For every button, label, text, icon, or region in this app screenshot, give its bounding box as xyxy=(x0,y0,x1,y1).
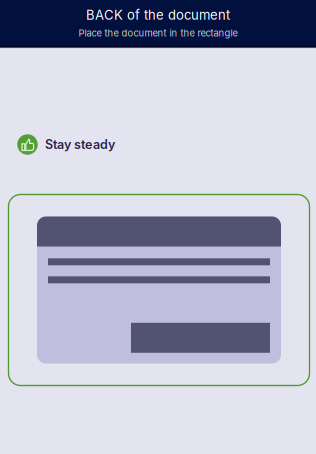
staticText: Stay steady xyxy=(45,137,115,152)
staticText: Place the document in the rectangle xyxy=(78,27,237,39)
staticText: BACK of the document xyxy=(86,7,230,23)
